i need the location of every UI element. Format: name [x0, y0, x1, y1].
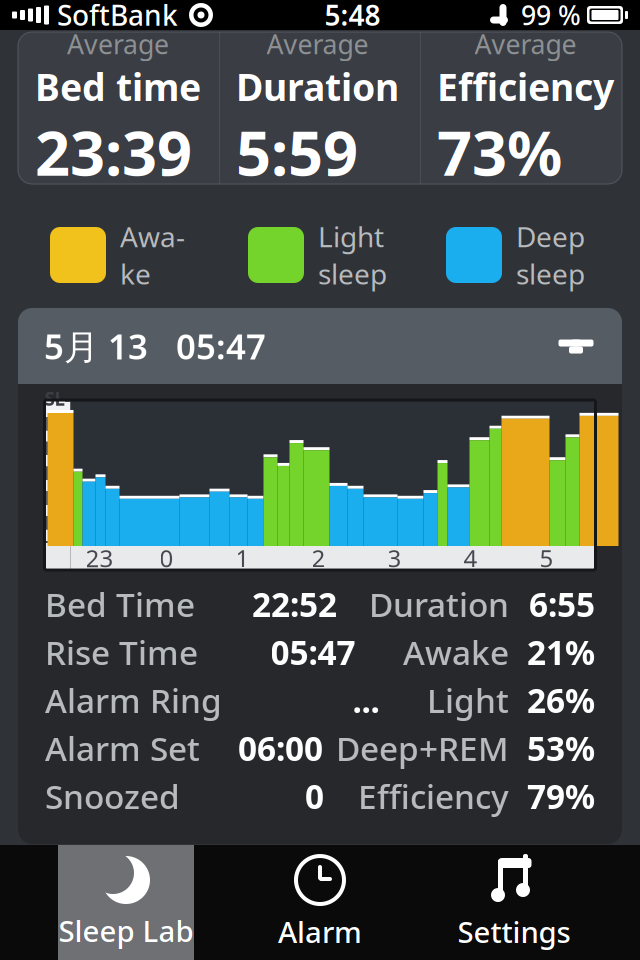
staticText: 79%	[527, 774, 595, 818]
staticText: SLEEP DEPTH	[44, 386, 70, 560]
staticText: 26%	[527, 678, 595, 722]
staticText: Duration	[369, 582, 509, 626]
staticText: 0	[159, 542, 173, 574]
staticText: Duration	[236, 62, 399, 111]
button[interactable]: Settings	[446, 845, 582, 960]
staticText: 23:39	[35, 111, 192, 193]
staticText: Deep+REM	[336, 726, 509, 770]
button[interactable]: Sleep Lab	[58, 845, 194, 960]
staticText: Average	[67, 26, 169, 62]
staticText: Sleep Lab	[58, 911, 193, 950]
staticText: Light	[427, 678, 509, 722]
staticText: 73%	[437, 111, 562, 193]
staticText: Efficiency	[437, 62, 614, 111]
staticText: Efficiency	[358, 774, 509, 818]
staticText: ...	[352, 678, 379, 722]
staticText: 2	[311, 542, 325, 574]
staticText: Light	[318, 218, 384, 255]
staticText: 0	[305, 774, 324, 818]
staticText: 5:59	[236, 111, 358, 193]
staticText: Rise Time	[45, 630, 198, 674]
staticText: Bed time	[35, 62, 201, 111]
staticText: Bed Time	[45, 582, 195, 626]
staticText: 4	[463, 542, 477, 574]
staticText: Alarm Set	[45, 726, 200, 770]
staticText: 6:55	[529, 582, 595, 626]
staticText: SoftBank	[57, 0, 178, 34]
button[interactable]: Alarm	[252, 845, 388, 960]
staticText: 5月 13	[44, 323, 148, 369]
staticText: 22:52	[252, 582, 337, 626]
button[interactable]: 5月 13	[18, 308, 622, 384]
staticText: Deep	[516, 218, 585, 255]
staticText: 23	[85, 542, 113, 574]
staticText: Average	[266, 26, 368, 62]
staticText: Awake	[120, 218, 185, 292]
staticText: 3	[387, 542, 401, 574]
staticText: 53%	[527, 726, 595, 770]
staticText: 1	[235, 542, 249, 574]
staticText: 5:48	[324, 0, 380, 34]
staticText: Settings	[457, 912, 570, 951]
staticText: 5	[539, 542, 553, 574]
staticText: 05:47	[176, 323, 266, 369]
staticText: Average	[474, 26, 576, 62]
staticText: sleep	[318, 255, 387, 292]
staticText: 05:47	[270, 630, 355, 674]
staticText: sleep	[516, 255, 585, 292]
staticText: Alarm	[278, 912, 362, 951]
staticText: Snoozed	[45, 774, 180, 818]
staticText: 21%	[527, 630, 595, 674]
staticText: Awake	[403, 630, 509, 674]
staticText: Alarm Ring	[45, 678, 222, 722]
staticText: 99 %	[521, 0, 581, 33]
staticText: 06:00	[238, 726, 323, 770]
